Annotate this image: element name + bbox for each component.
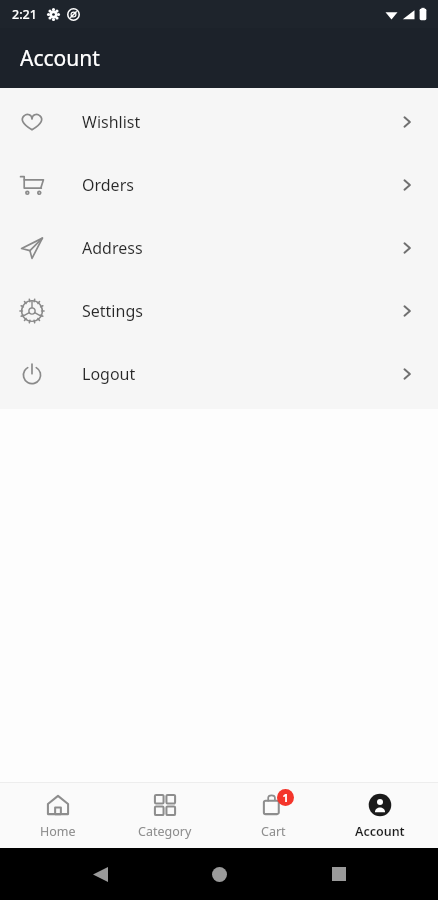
button[interactable]: Address <box>0 216 438 279</box>
staticText: Settings <box>82 300 143 322</box>
staticText: Account <box>20 44 100 73</box>
button[interactable]: Category <box>115 782 215 848</box>
staticText: Account <box>355 823 405 840</box>
staticText: Cart <box>261 823 286 840</box>
staticText: Home <box>40 823 76 840</box>
button[interactable]: Orders <box>0 153 438 216</box>
staticText: Orders <box>82 174 134 196</box>
button[interactable]: Settings <box>0 279 438 342</box>
button[interactable]: Recents <box>319 854 359 894</box>
button[interactable]: Back <box>80 854 120 894</box>
button[interactable]: Wishlist <box>0 90 438 153</box>
button[interactable]: Home <box>8 782 108 848</box>
staticText: 1 <box>282 791 289 805</box>
staticText: Address <box>82 237 143 259</box>
staticText: Logout <box>82 363 136 385</box>
staticText: Category <box>138 823 192 840</box>
button[interactable]: Logout <box>0 342 438 405</box>
button[interactable]: 1 <box>223 782 323 848</box>
staticText: 2:21 <box>12 6 37 23</box>
button[interactable]: Home <box>199 854 239 894</box>
button[interactable]: Account <box>330 782 430 848</box>
staticText: Wishlist <box>82 111 141 133</box>
